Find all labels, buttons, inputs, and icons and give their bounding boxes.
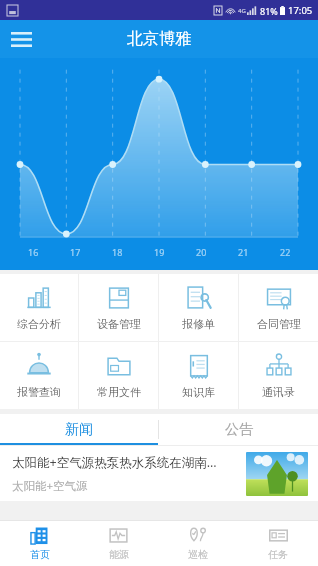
button[interactable]: 公告 bbox=[159, 414, 318, 445]
button[interactable]: 首页 bbox=[0, 521, 79, 566]
button[interactable]: 新闻 bbox=[0, 414, 158, 445]
button[interactable]: 合同管理 bbox=[239, 274, 318, 341]
staticText: 报修单 bbox=[182, 317, 215, 331]
staticText: 17 bbox=[70, 246, 81, 258]
staticText: 21 bbox=[238, 246, 249, 258]
staticText: 22 bbox=[280, 246, 291, 258]
staticText: 常用文件 bbox=[97, 385, 141, 399]
staticText: 20 bbox=[196, 246, 207, 258]
staticText: 任务 bbox=[268, 548, 288, 561]
staticText: 18 bbox=[112, 246, 123, 258]
staticText: 北京博雅 bbox=[127, 29, 191, 49]
staticText: 巡检 bbox=[188, 548, 208, 561]
staticText: 能源 bbox=[109, 548, 129, 561]
staticText: 17:05 bbox=[288, 4, 313, 17]
staticText: 综合分析 bbox=[17, 317, 61, 331]
staticText: 合同管理 bbox=[257, 317, 301, 331]
staticText: 报警查询 bbox=[17, 385, 61, 399]
staticText: 19 bbox=[154, 246, 165, 258]
staticText: 4G bbox=[238, 7, 246, 15]
staticText: 太阳能+空气源 bbox=[12, 478, 88, 494]
button[interactable]: 巡检 bbox=[158, 521, 238, 566]
staticText: 太阳能+空气源热泵热水系统在湖南... bbox=[12, 454, 217, 471]
staticText: 新闻 bbox=[65, 421, 93, 439]
staticText: 首页 bbox=[30, 548, 50, 561]
staticText: 设备管理 bbox=[97, 317, 141, 331]
button[interactable]: 通讯录 bbox=[239, 342, 318, 409]
button[interactable]: 设备管理 bbox=[79, 274, 158, 341]
staticText: 81% bbox=[260, 5, 278, 17]
staticText: 公告 bbox=[225, 421, 253, 439]
staticText: 知识库 bbox=[182, 385, 215, 399]
button[interactable]: 综合分析 bbox=[0, 274, 78, 341]
button[interactable]: 能源 bbox=[79, 521, 158, 566]
button[interactable]: 报警查询 bbox=[0, 342, 78, 409]
button[interactable]: 太阳能+空气源热泵热水系统在湖南... bbox=[0, 446, 318, 501]
staticText: 通讯录 bbox=[262, 385, 295, 399]
button[interactable]: 任务 bbox=[238, 521, 318, 566]
staticText: 16 bbox=[28, 246, 39, 258]
button[interactable]: 报修单 bbox=[159, 274, 238, 341]
button[interactable]: 知识库 bbox=[159, 342, 238, 409]
button[interactable]: 常用文件 bbox=[79, 342, 158, 409]
button[interactable]: Menu bbox=[6, 24, 36, 54]
